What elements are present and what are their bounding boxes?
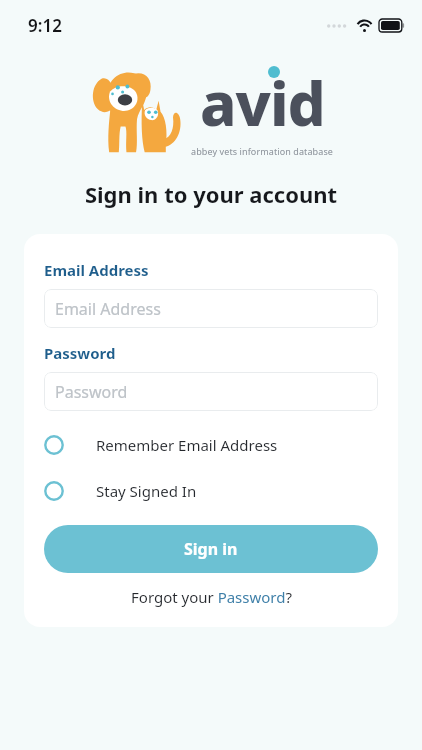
button[interactable]: Forgot your Password? <box>44 587 378 607</box>
staticText: Password <box>55 381 128 403</box>
staticText: Email Address <box>55 298 161 320</box>
button[interactable]: Password <box>44 372 378 411</box>
staticText: Sign in <box>184 538 238 560</box>
button[interactable]: Stay Signed In <box>44 471 378 511</box>
staticText: Email Address <box>44 260 149 280</box>
staticText: Password <box>44 343 116 363</box>
button[interactable]: Sign in <box>44 525 378 573</box>
button[interactable]: Remember Email Address <box>44 425 378 465</box>
staticText: Sign in to your account <box>0 179 422 209</box>
staticText: Stay Signed In <box>96 481 197 501</box>
staticText: 9:12 <box>28 14 62 37</box>
staticText: Forgot your Password? <box>131 587 292 607</box>
button[interactable]: Email Address <box>44 289 378 328</box>
staticText: abbey vets information database <box>191 145 333 157</box>
staticText: Remember Email Address <box>96 435 278 455</box>
staticText: avid <box>200 62 325 144</box>
